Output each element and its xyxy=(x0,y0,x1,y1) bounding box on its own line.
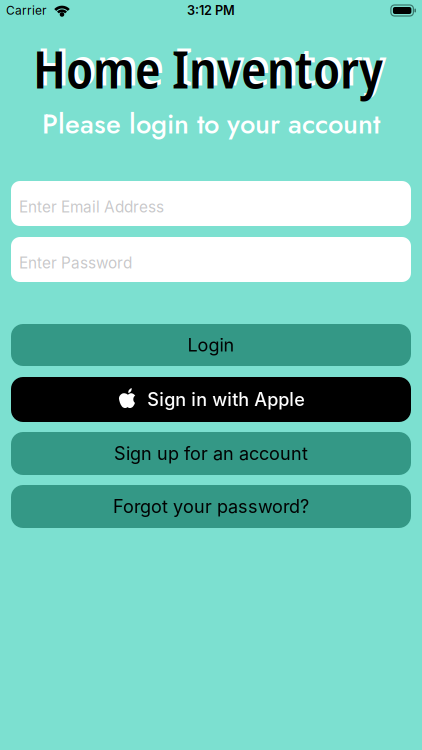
button[interactable]: Sign up for an account xyxy=(11,432,411,475)
staticText: Home Inventory xyxy=(36,29,386,101)
staticText: Forgot your password? xyxy=(113,496,309,517)
staticText: Enter Password xyxy=(19,254,132,272)
staticText: Sign up for an account xyxy=(114,443,308,464)
staticText: Login xyxy=(187,334,234,356)
staticText: Please login to your account xyxy=(42,104,380,144)
staticText: Sign in with Apple xyxy=(147,389,305,410)
button[interactable]: Enter Email Address xyxy=(11,181,411,226)
button[interactable]: Sign in with Apple xyxy=(11,377,411,422)
staticText: Enter Email Address xyxy=(19,198,164,216)
button[interactable]: Enter Password xyxy=(11,237,411,282)
button[interactable]: Forgot your password? xyxy=(11,485,411,528)
button[interactable]: Login xyxy=(11,324,411,366)
staticText: Home Inventory xyxy=(33,32,383,104)
staticText: Carrier xyxy=(6,3,47,18)
staticText: 3:12 PM xyxy=(187,3,235,18)
